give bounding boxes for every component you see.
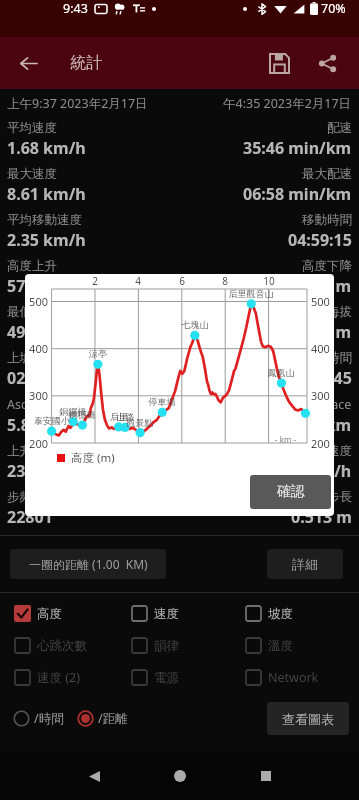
button[interactable]: 心跳次數 — [14, 637, 131, 654]
staticText: 500 — [311, 294, 330, 309]
staticText: 步長 — [327, 489, 352, 505]
staticText: 500 — [25, 294, 48, 309]
staticText: 停車場 — [127, 396, 197, 407]
button[interactable]: Home — [156, 752, 204, 800]
staticText: 562 m — [304, 275, 352, 297]
staticText: 200 — [25, 436, 48, 451]
button[interactable]: 查看圖表 — [267, 702, 349, 735]
staticText: 電源 — [154, 670, 179, 686]
staticText: 5.81 min/km — [7, 414, 107, 436]
staticText: 上午9:37 2023年2月17日 — [7, 95, 148, 112]
staticText: 9:43 — [63, 0, 88, 17]
staticText: 8 — [213, 274, 237, 288]
staticText: 下坡時間 — [302, 350, 352, 366]
staticText: 坡度 — [268, 606, 293, 622]
staticText: 心跳次數 — [37, 638, 87, 654]
staticText: 200 — [311, 436, 330, 451]
staticText: 高度 — [37, 606, 62, 622]
button[interactable]: /距離 — [77, 710, 128, 727]
staticText: 確認 — [277, 483, 305, 501]
button[interactable]: Back — [0, 37, 56, 89]
staticText: Network — [268, 669, 319, 686]
button[interactable]: /時間 — [13, 710, 64, 727]
staticText: 22801 — [7, 506, 53, 528]
button[interactable]: 速度 — [131, 605, 248, 622]
staticText: 205 m/h — [287, 460, 352, 482]
staticText: 高度上升 — [7, 258, 57, 274]
staticText: 高度下降 — [302, 258, 352, 274]
staticText: 4.92 min/km — [252, 414, 352, 436]
staticText: 最高海拔 — [302, 304, 352, 320]
staticText: 35:46 min/km — [243, 137, 352, 159]
staticText: 溫度 — [268, 638, 293, 654]
staticText: /時間 — [34, 710, 64, 727]
button[interactable]: Save — [255, 39, 303, 87]
staticText: 300 — [25, 388, 48, 403]
staticText: 300 — [311, 388, 330, 403]
button[interactable]: Network — [245, 669, 340, 686]
staticText: Descent Pace — [273, 396, 352, 413]
button[interactable]: Recents — [242, 752, 290, 800]
staticText: 后里 — [84, 411, 154, 422]
button[interactable]: 韻律 — [131, 637, 248, 654]
staticText: 01:23:45 — [288, 367, 352, 389]
staticText: 涼亭 — [63, 348, 133, 359]
staticText: 10 — [257, 274, 281, 288]
button[interactable]: 速度 (2) — [14, 669, 131, 686]
staticText: 詳細 — [292, 556, 318, 572]
staticText: 速度 (2) — [37, 669, 80, 686]
staticText: 韻律 — [154, 638, 179, 654]
button[interactable]: Back — [70, 752, 118, 800]
staticText: 統計 — [70, 53, 102, 73]
staticText: 231 m/h — [7, 460, 72, 482]
staticText: 平均速度 — [7, 120, 57, 136]
button[interactable]: 高度 — [14, 605, 131, 622]
staticText: 上升速度 — [7, 443, 57, 459]
staticText: 2 — [83, 274, 107, 288]
staticText: 泰安國小 — [25, 415, 87, 426]
staticText: 鳳凰山 — [246, 367, 316, 378]
staticText: 觀景點 — [105, 417, 175, 428]
staticText: 501 m — [304, 321, 352, 343]
button[interactable]: 溫度 — [245, 637, 340, 654]
staticText: 8.61 km/h — [7, 183, 86, 205]
staticText: 400 — [311, 341, 330, 356]
staticText: - km - — [275, 434, 297, 445]
staticText: 步頻 — [7, 489, 32, 505]
button[interactable]: 一圈的距離 (1.00 KM) — [10, 549, 166, 579]
staticText: 鋼穩橋 — [47, 409, 117, 420]
staticText: /距離 — [98, 710, 128, 727]
staticText: 山路 — [90, 411, 160, 422]
staticText: 上坡時間 — [7, 350, 57, 366]
staticText: 查看圖表 — [282, 711, 334, 727]
staticText: 04:59:15 — [288, 229, 352, 251]
staticText: 2.35 km/h — [7, 229, 86, 251]
staticText: 574 m — [7, 275, 55, 297]
button[interactable]: Share — [303, 39, 351, 87]
staticText: 速度 — [154, 606, 179, 622]
staticText: 七塊山 — [160, 319, 230, 330]
staticText: 498 m — [7, 321, 55, 343]
staticText: 6 — [170, 274, 194, 288]
staticText: 06:58 min/km — [243, 183, 352, 205]
staticText: 午4:35 2023年2月17日 — [223, 95, 352, 112]
staticText: 0.513 m — [291, 506, 352, 528]
button[interactable]: 詳細 — [267, 549, 343, 579]
staticText: 最大速度 — [7, 166, 57, 182]
button[interactable]: 確認 — [250, 475, 331, 509]
staticText: 銅鑼橋 — [38, 406, 108, 417]
staticText: 400 — [25, 341, 48, 356]
staticText: 高度 (m) — [71, 450, 115, 466]
staticText: Ascent Pace — [7, 396, 78, 413]
staticText: 最低海拔 — [7, 304, 57, 320]
staticText: 4 — [126, 274, 150, 288]
staticText: 后里觀音山 — [216, 288, 286, 299]
button[interactable]: 坡度 — [245, 605, 340, 622]
button[interactable]: 電源 — [131, 669, 248, 686]
staticText: 平均移動速度 — [7, 212, 82, 228]
staticText: 02:41:22 — [7, 367, 71, 389]
staticText: 移動時間 — [302, 212, 352, 228]
staticText: 下降速度 — [302, 443, 352, 459]
staticText: 最大配速 — [302, 166, 352, 182]
staticText: 1.68 km/h — [7, 137, 86, 159]
